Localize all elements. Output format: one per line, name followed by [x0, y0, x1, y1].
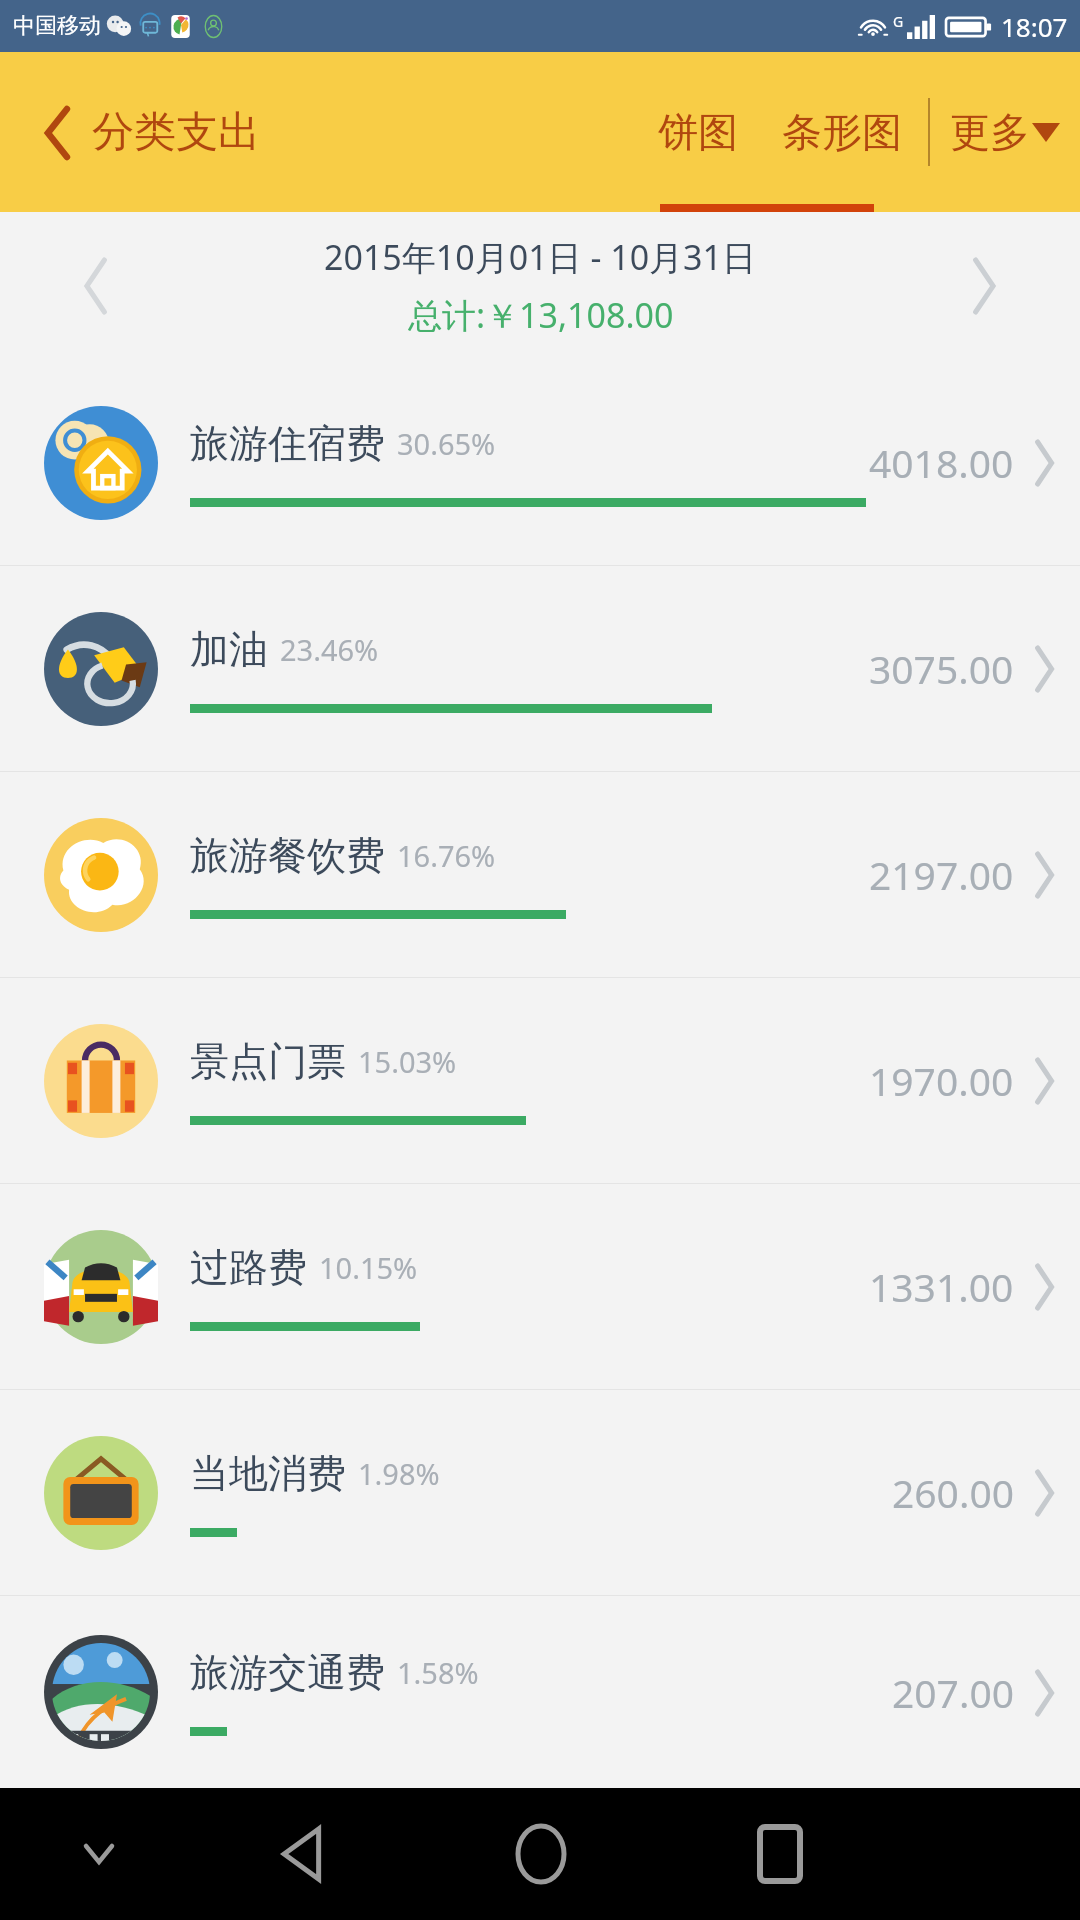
staticText: 15.03% — [358, 1042, 457, 1081]
button[interactable]: Next period — [952, 240, 1016, 332]
staticText: 中国移动 — [13, 12, 101, 40]
button[interactable]: Previous period — [64, 240, 128, 332]
staticText: 10.15% — [319, 1248, 418, 1287]
button[interactable]: 加油 — [0, 566, 1080, 771]
button[interactable]: 分类支出 — [0, 88, 284, 177]
staticText: 更多 — [950, 107, 1030, 157]
staticText: 30.65% — [397, 424, 496, 463]
staticText: 2015年10月01日 - 10月31日 — [324, 234, 757, 280]
staticText: 饼图 — [658, 107, 738, 157]
staticText: 207.00 — [892, 1666, 1014, 1719]
button[interactable]: 条形图 — [768, 93, 916, 171]
staticText: 4018.00 — [869, 436, 1014, 489]
staticText: 当地消费 — [190, 1449, 346, 1498]
staticText: 旅游交通费 — [190, 1648, 385, 1697]
button[interactable]: 旅游交通费 — [0, 1596, 1080, 1788]
staticText: 加油 — [190, 625, 268, 674]
staticText: 16.76% — [397, 836, 496, 875]
staticText: 景点门票 — [190, 1037, 346, 1086]
staticText: 1331.00 — [869, 1260, 1014, 1313]
staticText: 条形图 — [782, 107, 902, 157]
button[interactable]: 旅游住宿费 — [0, 360, 1080, 565]
button[interactable]: 饼图 — [644, 93, 752, 171]
button[interactable]: Back — [256, 1805, 346, 1903]
staticText: 旅游住宿费 — [190, 419, 385, 468]
staticText: 1.98% — [358, 1454, 440, 1493]
staticText: 过路费 — [190, 1243, 307, 1292]
button[interactable]: 当地消费 — [0, 1390, 1080, 1595]
staticText: 总计:￥13,108.00 — [408, 292, 674, 338]
button[interactable]: Hide keyboard — [68, 1828, 130, 1880]
button[interactable]: 旅游餐饮费 — [0, 772, 1080, 977]
staticText: 2197.00 — [869, 848, 1014, 901]
staticText: 3075.00 — [869, 642, 1014, 695]
button[interactable]: 更多 — [944, 93, 1066, 171]
staticText: 1970.00 — [869, 1054, 1014, 1107]
staticText: G — [893, 12, 904, 31]
staticText: 分类支出 — [92, 106, 260, 159]
staticText: 23.46% — [280, 630, 379, 669]
staticText: 260.00 — [892, 1466, 1014, 1519]
staticText: 1.58% — [397, 1653, 479, 1692]
button[interactable]: 过路费 — [0, 1184, 1080, 1389]
button[interactable]: 景点门票 — [0, 978, 1080, 1183]
button[interactable]: Recents — [736, 1803, 824, 1905]
staticText: 18:07 — [1001, 9, 1068, 44]
staticText: 旅游餐饮费 — [190, 831, 385, 880]
button[interactable]: Home — [494, 1802, 588, 1906]
